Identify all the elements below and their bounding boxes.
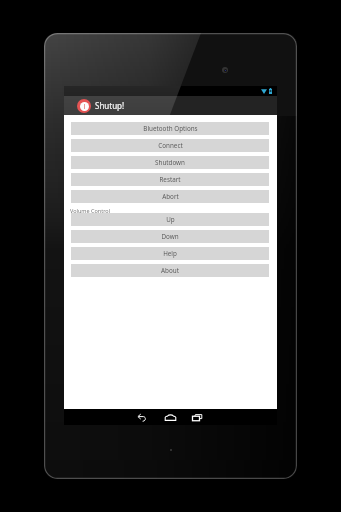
- staticText: Volume Control: [70, 207, 111, 213]
- staticText: Bluetooth Options: [143, 124, 198, 133]
- staticText: Abort: [162, 192, 179, 201]
- button[interactable]: About: [71, 264, 269, 277]
- button[interactable]: Home: [163, 409, 178, 425]
- button[interactable]: Recent apps: [190, 409, 204, 425]
- button[interactable]: Shutdown: [71, 156, 269, 169]
- button[interactable]: Abort: [71, 190, 269, 203]
- staticText: Restart: [159, 175, 181, 184]
- button[interactable]: Connect: [71, 139, 269, 152]
- button[interactable]: Help: [71, 247, 269, 260]
- button[interactable]: Up: [71, 213, 269, 226]
- staticText: Help: [163, 249, 177, 258]
- staticText: Shutup!: [95, 100, 125, 111]
- button[interactable]: Back: [135, 409, 148, 425]
- staticText: Shutdown: [155, 158, 185, 167]
- button[interactable]: Restart: [71, 173, 269, 186]
- staticText: About: [161, 266, 179, 275]
- staticText: Down: [161, 232, 179, 241]
- staticText: Connect: [158, 141, 183, 150]
- button[interactable]: Down: [71, 230, 269, 243]
- button[interactable]: Bluetooth Options: [71, 122, 269, 135]
- staticText: Up: [166, 215, 175, 224]
